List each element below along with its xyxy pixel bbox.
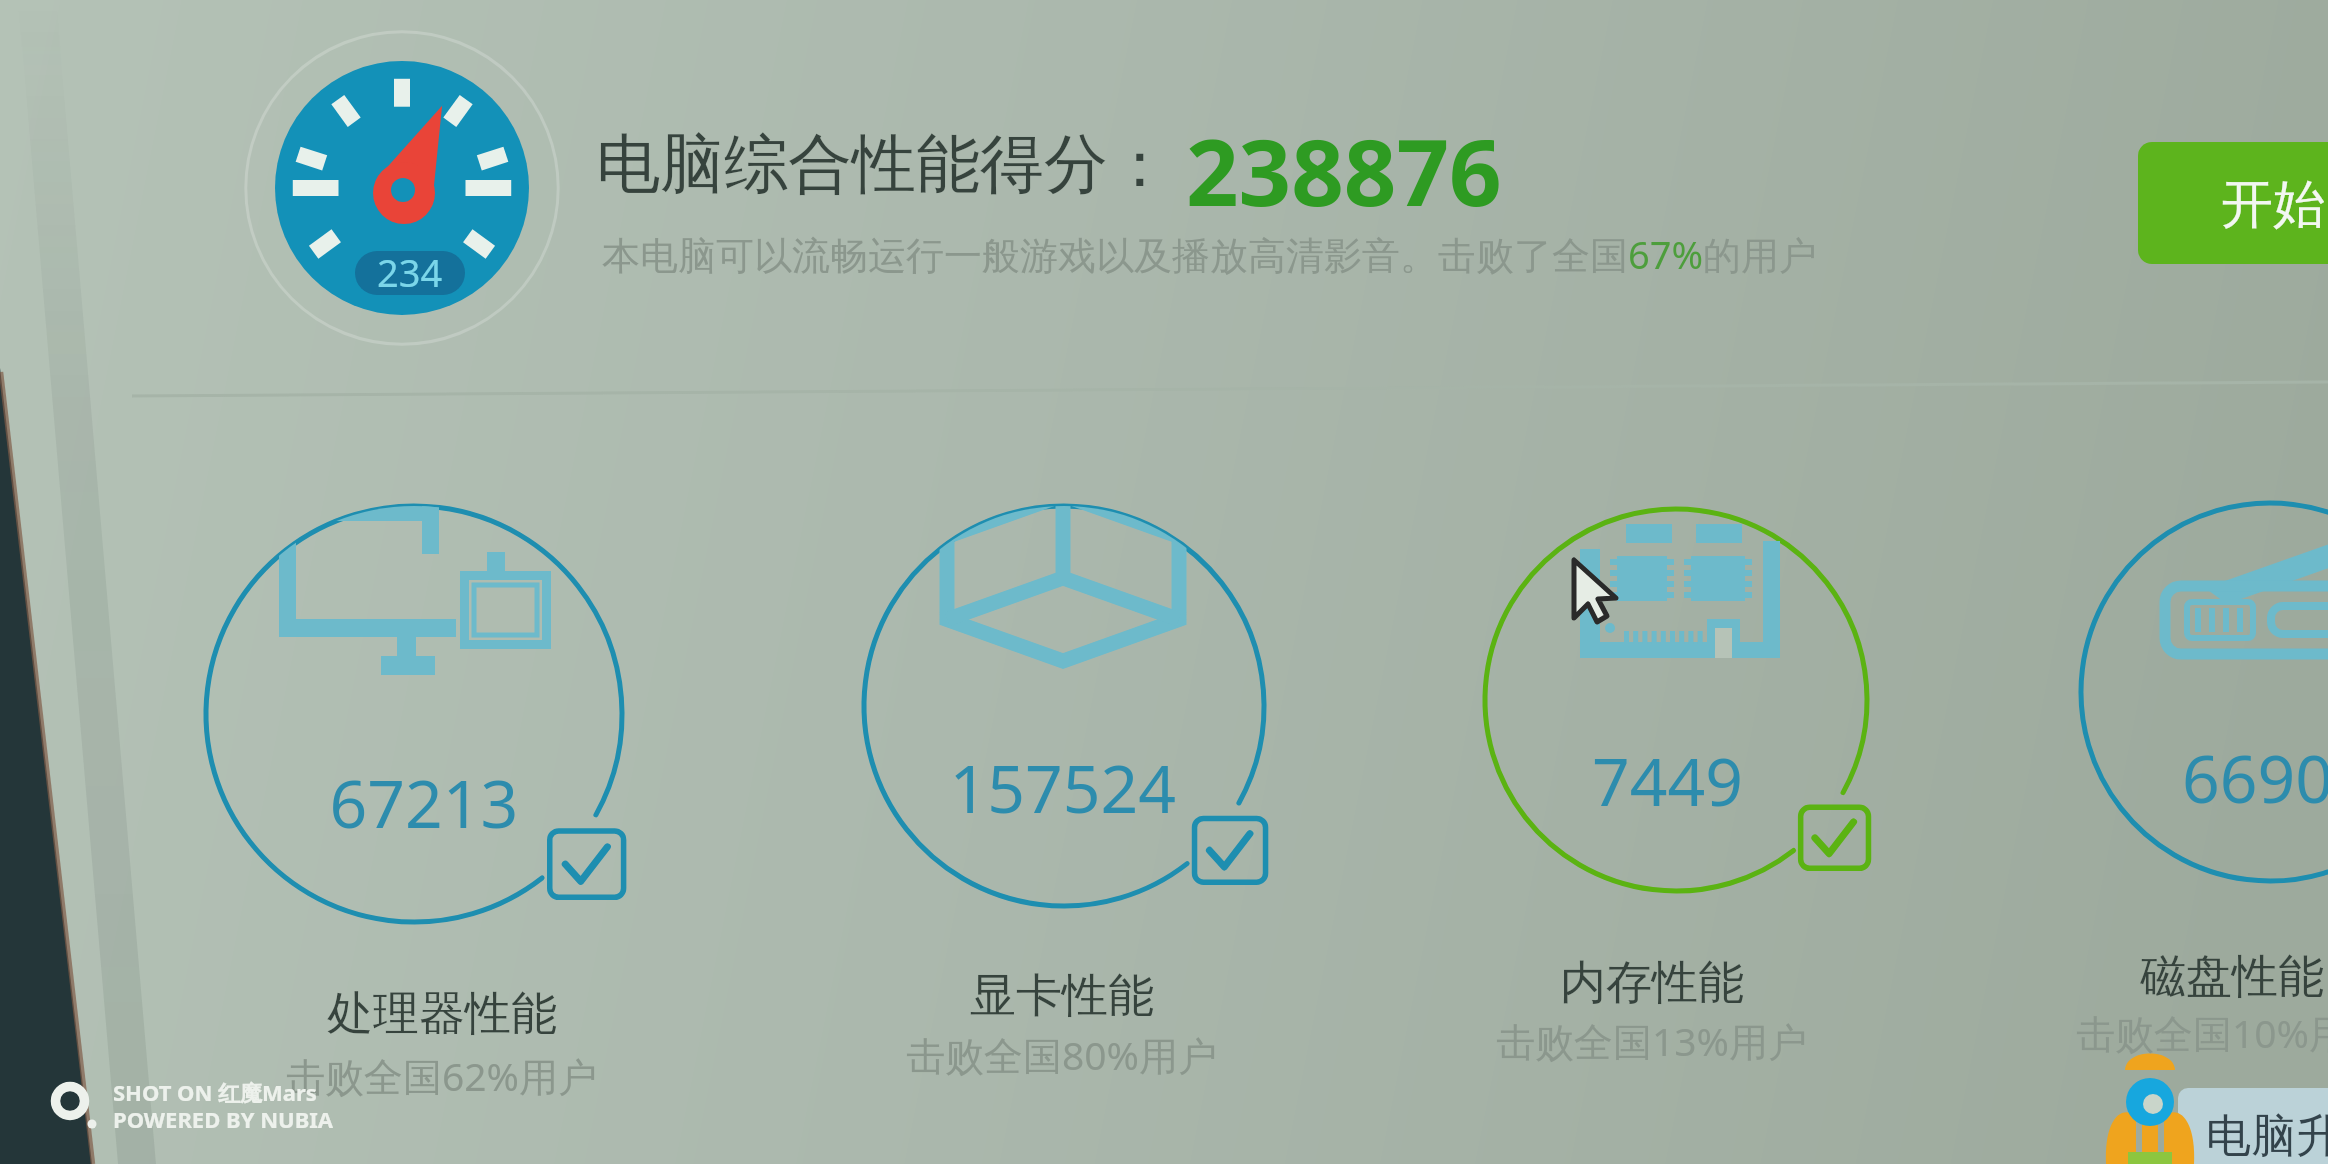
button[interactable]: 磁盘性能 6690 [2072, 494, 2328, 1054]
button[interactable]: 显卡性能 157524 [854, 496, 1274, 1076]
button[interactable]: 电脑升级 Upgrade PC [2100, 1054, 2328, 1164]
button[interactable]: 处理器性能 67213 [196, 498, 636, 1098]
button[interactable]: 开始 Start benchmark [2138, 142, 2328, 264]
button[interactable]: 内存性能 7449 [1475, 498, 1885, 1058]
